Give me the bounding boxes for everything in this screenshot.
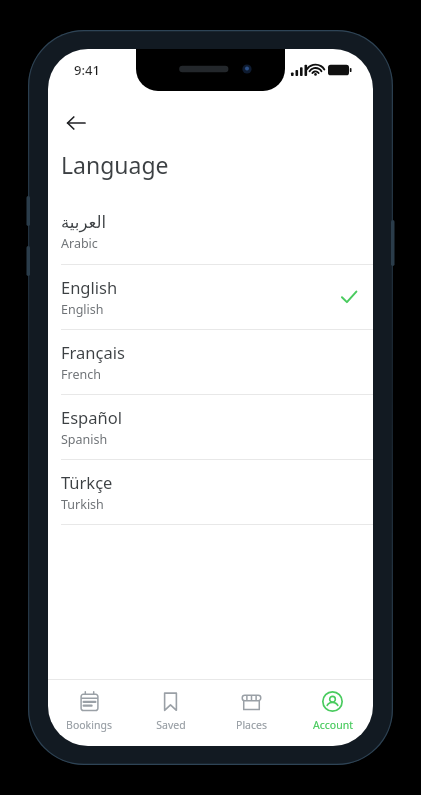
staticText: Spanish [61,431,108,448]
staticText: العربية [61,213,107,232]
staticText: Saved [156,718,186,732]
staticText: 9:41 [74,61,100,79]
staticText: Bookings [66,718,112,732]
button[interactable]: Français [48,330,373,394]
button[interactable]: Türkçe [48,460,373,524]
staticText: Arabic [61,235,98,252]
button[interactable]: Bookings [48,680,130,732]
button[interactable]: Back [56,103,96,143]
button[interactable]: Español [48,395,373,459]
button[interactable]: Saved [130,680,211,732]
staticText: Account [313,718,353,732]
staticText: Français [61,341,125,363]
button[interactable]: Account [292,680,373,732]
button[interactable]: العربية [48,200,373,264]
staticText: Español [61,406,122,428]
staticText: Places [236,718,267,732]
button[interactable]: English [48,265,373,329]
staticText: English [61,276,118,298]
staticText: French [61,366,101,383]
button[interactable]: Places [211,680,292,732]
staticText: Turkish [61,496,104,513]
staticText: Language [61,149,169,180]
staticText: English [61,301,104,318]
staticText: Türkçe [61,471,113,493]
